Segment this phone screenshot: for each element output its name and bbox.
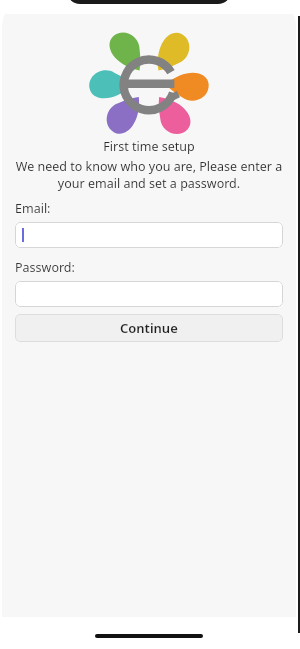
staticText: Email: <box>15 200 51 217</box>
button[interactable]: Password input field <box>15 281 283 307</box>
staticText: We need to know who you are, Please ente… <box>12 158 286 191</box>
staticText: Continue <box>120 319 178 337</box>
button[interactable]: Email input field <box>15 222 283 248</box>
button[interactable]: Continue <box>15 314 283 342</box>
staticText: Password: <box>15 259 75 276</box>
staticText: First time setup <box>2 138 296 155</box>
other: App logo <box>90 38 208 130</box>
